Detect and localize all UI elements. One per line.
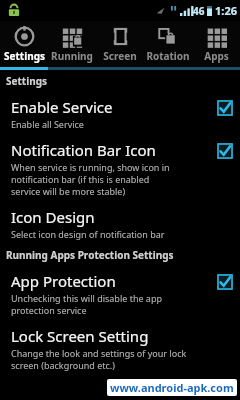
staticText: service will be more stable) <box>11 185 126 197</box>
staticText: Enable all Service <box>11 118 84 130</box>
staticText: When service is running, show icon in <box>11 161 170 173</box>
staticText: notification bar (if this is enabled <box>11 173 150 185</box>
staticText: Running Apps Protection Settings <box>6 248 174 262</box>
button[interactable]: Enable Service <box>0 91 240 134</box>
staticText: Settings <box>4 49 45 63</box>
button[interactable]: Notification Bar Icon <box>0 134 240 201</box>
button[interactable]: Toggle Notification Bar Icon <box>217 143 233 159</box>
button[interactable]: Screen <box>96 21 144 67</box>
staticText: screen (background etc.) <box>11 359 115 371</box>
button[interactable]: Toggle Enable Service <box>217 100 233 116</box>
staticText: Enable Service <box>11 97 113 117</box>
button[interactable]: Toggle App Protection <box>217 274 233 290</box>
button[interactable]: Icon Design <box>0 201 240 244</box>
staticText: protection service <box>11 304 87 316</box>
staticText: Rotation <box>146 49 190 63</box>
button[interactable]: Apps <box>192 21 240 67</box>
staticText: App Protection <box>11 271 116 291</box>
staticText: www.android-apk.com <box>110 380 234 395</box>
button[interactable]: App Protection <box>0 265 240 320</box>
staticText: Settings <box>6 74 47 88</box>
staticText: Lock Screen Setting <box>11 326 149 346</box>
staticText: Unchecking this will disable the app <box>11 292 162 304</box>
staticText: 46 <box>193 4 205 18</box>
staticText: Select icon design of notification bar <box>11 228 165 240</box>
staticText: Running <box>51 49 93 63</box>
button[interactable]: Settings <box>0 21 48 67</box>
staticText: Icon Design <box>11 207 95 227</box>
staticText: 1:26 <box>215 3 237 18</box>
button[interactable]: Rotation <box>144 21 192 67</box>
button[interactable]: Lock Screen Setting <box>0 320 240 375</box>
staticText: Apps <box>204 49 229 63</box>
staticText: Change the look and settings of your loc… <box>11 347 187 359</box>
button[interactable]: Running <box>48 21 96 67</box>
staticText: Screen <box>103 49 137 63</box>
staticText: Notification Bar Icon <box>11 140 156 160</box>
